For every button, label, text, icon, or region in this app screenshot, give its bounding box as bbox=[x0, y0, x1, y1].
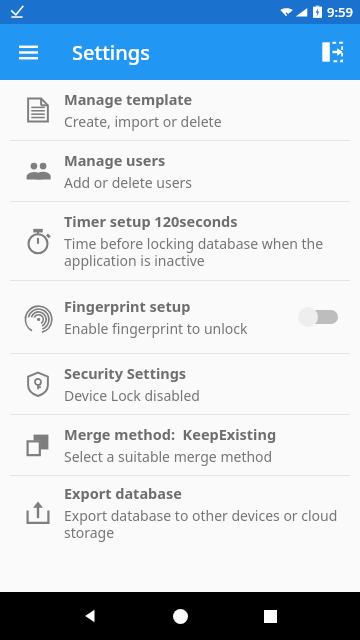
button[interactable]: Manage template bbox=[0, 80, 360, 140]
button[interactable]: Home bbox=[160, 596, 200, 636]
staticText: Manage users bbox=[64, 150, 166, 170]
staticText: Manage template bbox=[64, 89, 193, 109]
button[interactable]: Fingerprint setup bbox=[0, 281, 360, 353]
button[interactable]: Export database bbox=[0, 476, 360, 550]
staticText: 9:59 bbox=[327, 3, 353, 21]
staticText: Settings bbox=[72, 39, 150, 66]
button[interactable]: Merge method: KeepExisting bbox=[0, 415, 360, 475]
staticText: Export database bbox=[64, 483, 182, 503]
staticText: Select a suitable merge method bbox=[64, 447, 273, 466]
staticText: Security Settings bbox=[64, 363, 187, 383]
staticText: Fingerprint setup bbox=[64, 296, 191, 316]
button[interactable]: Security Settings bbox=[0, 354, 360, 414]
button[interactable]: Enable fingerprint to unlock bbox=[298, 303, 344, 331]
staticText: Enable fingerprint to unlock bbox=[64, 319, 248, 338]
button[interactable]: Timer setup 120seconds bbox=[0, 202, 360, 280]
staticText: Export database to other devices or clou… bbox=[64, 506, 344, 543]
button[interactable]: Open navigation menu bbox=[8, 32, 48, 72]
staticText: Add or delete users bbox=[64, 173, 193, 192]
staticText: Device Lock disabled bbox=[64, 386, 200, 405]
button[interactable]: Back bbox=[70, 596, 110, 636]
staticText: Time before locking database when the ap… bbox=[64, 234, 344, 271]
button[interactable]: Log out bbox=[310, 30, 354, 74]
button[interactable]: Manage users bbox=[0, 141, 360, 201]
button[interactable]: Recent apps bbox=[250, 596, 290, 636]
staticText: Merge method: KeepExisting bbox=[64, 424, 277, 444]
staticText: Timer setup 120seconds bbox=[64, 211, 238, 231]
staticText: Create, import or delete bbox=[64, 112, 222, 131]
